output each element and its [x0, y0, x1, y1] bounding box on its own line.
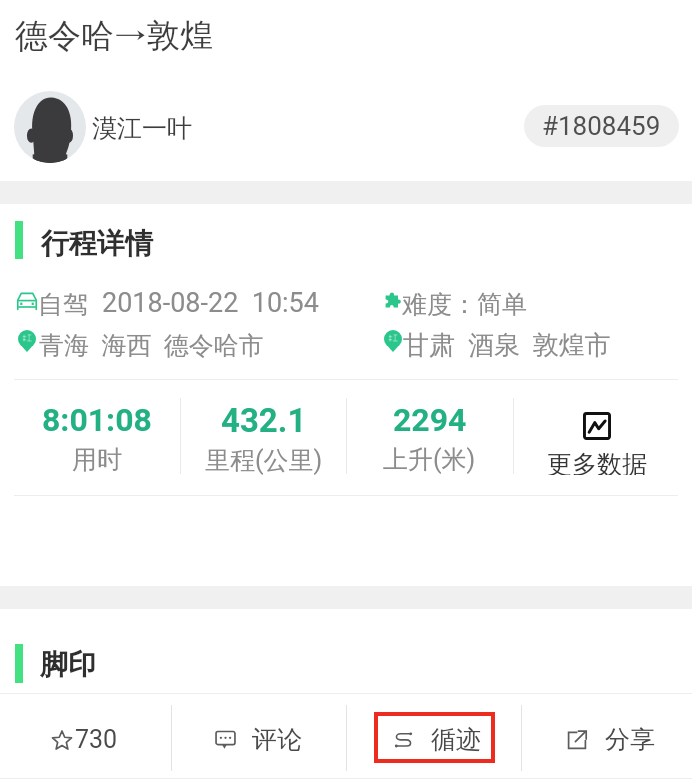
staticText: 德令哈→敦煌: [15, 15, 213, 57]
staticText: 行程详情: [41, 226, 153, 261]
button[interactable]: Comments: [173, 697, 346, 781]
button[interactable]: Favorite, 730: [0, 697, 173, 781]
staticText: 难度：简单: [402, 289, 527, 320]
staticText: 评论: [252, 724, 302, 755]
staticText: 自驾: [38, 289, 88, 320]
staticText: #1808459: [542, 111, 661, 141]
staticText: 更多数据: [547, 449, 647, 475]
staticText: 里程(公里): [205, 445, 323, 475]
staticText: 漠江一叶: [92, 113, 192, 144]
staticText: 2018-08-22 10:54: [102, 287, 319, 319]
staticText: 730: [75, 725, 118, 754]
staticText: 青海 海西 德令哈市: [39, 330, 264, 361]
button[interactable]: 更多数据: [513, 398, 680, 475]
staticText: 循迹: [431, 724, 481, 755]
button[interactable]: User avatar: [14, 91, 86, 163]
staticText: 8:01:08: [42, 401, 152, 439]
button[interactable]: 2294: [346, 398, 513, 475]
button[interactable]: 432.1: [180, 398, 347, 475]
button[interactable]: Share: [519, 697, 692, 781]
staticText: 2294: [393, 401, 467, 439]
button[interactable]: 8:01:08: [13, 398, 180, 475]
button[interactable]: Follow track: [346, 697, 519, 781]
staticText: 分享: [605, 724, 655, 755]
staticText: 上升(米): [383, 444, 476, 475]
staticText: 甘肃 酒泉 敦煌市: [403, 329, 611, 362]
staticText: 脚印: [40, 647, 96, 682]
staticText: 432.1: [221, 401, 307, 440]
staticText: 用时: [72, 444, 122, 475]
button[interactable]: #1808459: [524, 105, 679, 147]
